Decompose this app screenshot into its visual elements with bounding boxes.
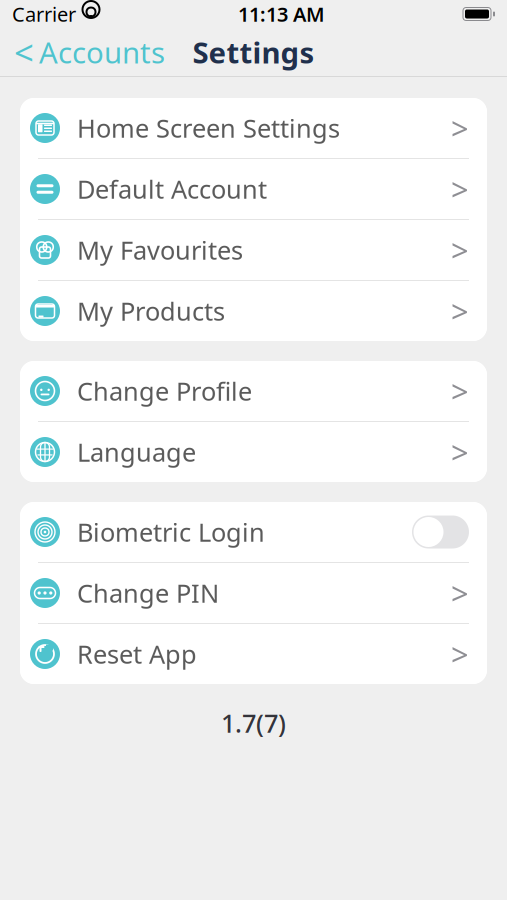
button[interactable]: My Products — [20, 281, 487, 341]
staticText: 11:13 AM — [238, 1, 325, 27]
staticText: > — [451, 634, 469, 674]
button[interactable]: My Favourites — [20, 220, 487, 280]
button[interactable]: Reset App — [20, 624, 487, 684]
staticText: My Favourites — [77, 233, 243, 267]
staticText: > — [451, 169, 469, 209]
button[interactable]: Change Profile — [20, 361, 487, 421]
staticText: > — [451, 573, 469, 613]
button[interactable]: < — [0, 23, 165, 81]
button[interactable]: Language — [20, 422, 487, 482]
staticText: 1.7(7) — [221, 706, 286, 740]
staticText: > — [451, 371, 469, 411]
button[interactable]: Change PIN — [20, 563, 487, 623]
staticText: > — [451, 432, 469, 472]
button[interactable]: Default Account — [20, 159, 487, 219]
staticText: > — [451, 108, 469, 148]
staticText: Default Account — [77, 172, 267, 206]
staticText: < — [14, 29, 34, 75]
staticText: Change Profile — [77, 374, 252, 408]
staticText: Accounts — [39, 32, 165, 71]
staticText: Language — [77, 435, 196, 469]
staticText: Settings — [192, 32, 314, 71]
staticText: > — [451, 230, 469, 270]
button[interactable]: Biometric Login — [20, 502, 487, 562]
staticText: Biometric Login — [77, 515, 265, 549]
staticText: Carrier — [12, 1, 76, 27]
staticText: > — [451, 291, 469, 331]
staticText: My Products — [77, 294, 225, 328]
button[interactable]: Home Screen Settings — [20, 98, 487, 158]
staticText: Reset App — [77, 637, 197, 671]
staticText: Change PIN — [77, 576, 219, 610]
staticText: Home Screen Settings — [77, 111, 340, 145]
